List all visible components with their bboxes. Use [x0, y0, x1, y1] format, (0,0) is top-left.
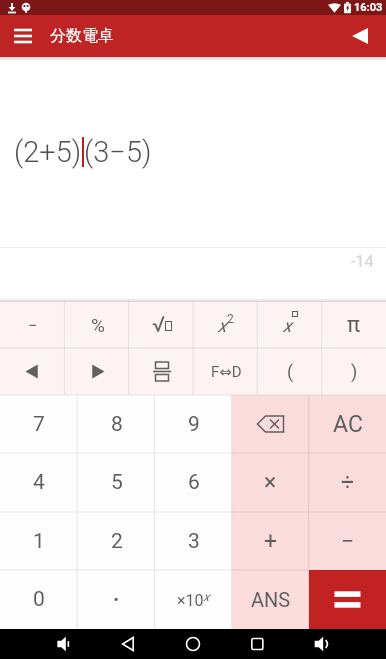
staticText: 7 — [33, 412, 45, 437]
button[interactable]: − — [0, 302, 65, 348]
staticText: 1 — [33, 529, 45, 554]
button[interactable]: − — [309, 512, 386, 570]
button[interactable]: 2 — [78, 512, 155, 570]
staticText: (2+5) — [14, 135, 82, 169]
staticText: 9 — [188, 412, 200, 437]
staticText: π — [347, 312, 361, 338]
staticText: √ — [152, 312, 166, 338]
staticText: 2 — [227, 312, 234, 326]
staticText: x — [218, 315, 227, 336]
staticText: 0 — [33, 587, 45, 612]
staticText: -14 — [351, 252, 374, 271]
staticText: × — [264, 469, 277, 496]
staticText: · — [113, 587, 120, 612]
staticText: AC — [333, 411, 363, 438]
button[interactable]: × — [232, 453, 309, 512]
button[interactable]: ×10x — [155, 570, 232, 629]
button[interactable] — [98, 629, 162, 659]
button[interactable]: ÷ — [309, 453, 386, 512]
button[interactable]: F⇔D — [194, 348, 258, 395]
staticText: F⇔D — [211, 363, 242, 381]
staticText: ) — [351, 361, 358, 382]
button[interactable] — [309, 570, 386, 629]
button[interactable] — [162, 629, 226, 659]
button[interactable]: 6 — [155, 453, 232, 512]
button[interactable]: 0 — [0, 570, 78, 629]
button[interactable]: x — [194, 302, 258, 348]
button[interactable] — [290, 629, 354, 659]
staticText: ÷ — [341, 469, 355, 496]
button[interactable]: % — [65, 302, 130, 348]
button[interactable] — [0, 348, 65, 395]
button[interactable]: 7 — [0, 395, 78, 453]
button[interactable]: ( — [258, 348, 322, 395]
button[interactable]: 5 — [78, 453, 155, 512]
staticText: ANS — [251, 588, 291, 611]
staticText: x — [283, 315, 292, 336]
button[interactable]: 8 — [78, 395, 155, 453]
button[interactable]: π — [322, 302, 386, 348]
staticText: − — [341, 528, 355, 555]
staticText: % — [91, 314, 105, 336]
button[interactable]: 3 — [155, 512, 232, 570]
staticText: 16:03 — [354, 1, 383, 14]
staticText: 分数電卓 — [50, 26, 114, 46]
button[interactable]: + — [232, 512, 309, 570]
button[interactable]: AC — [309, 395, 386, 453]
staticText: ×10x — [177, 590, 210, 609]
staticText: 6 — [188, 470, 200, 495]
button[interactable]: 1 — [0, 512, 78, 570]
button[interactable] — [226, 629, 290, 659]
button[interactable]: √ — [130, 302, 194, 348]
button[interactable] — [65, 348, 130, 395]
button[interactable]: · — [78, 570, 155, 629]
button[interactable] — [33, 629, 98, 659]
staticText: 2 — [111, 529, 123, 554]
staticText: 8 — [111, 412, 123, 437]
button[interactable] — [8, 20, 40, 52]
button[interactable]: 4 — [0, 453, 78, 512]
staticText: − — [28, 316, 38, 335]
button[interactable] — [130, 348, 194, 395]
staticText: (3−5) — [84, 135, 152, 169]
staticText: 3 — [188, 529, 200, 554]
button[interactable]: ) — [322, 348, 386, 395]
button[interactable] — [344, 20, 376, 52]
button[interactable]: ANS — [232, 570, 309, 629]
staticText: 5 — [111, 470, 123, 495]
staticText: + — [264, 528, 278, 555]
button[interactable]: 9 — [155, 395, 232, 453]
staticText: 4 — [33, 470, 45, 495]
button[interactable]: x — [258, 302, 322, 348]
staticText: ( — [287, 361, 294, 382]
button[interactable] — [232, 395, 309, 453]
